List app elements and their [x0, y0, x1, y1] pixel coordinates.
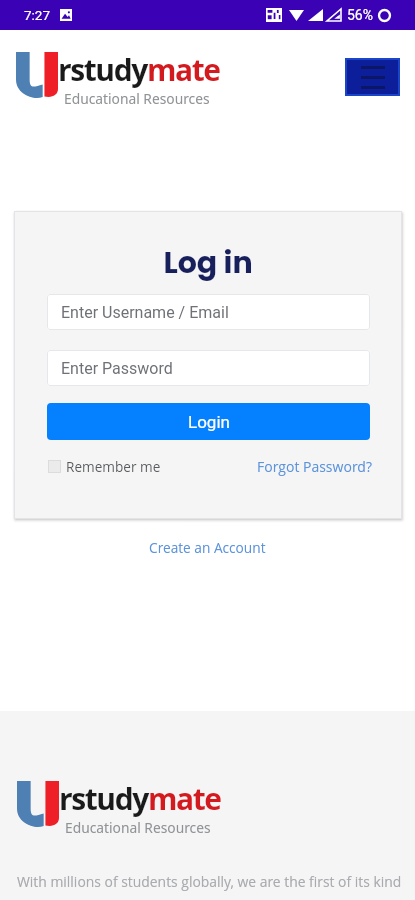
- staticText: rstudymate: [58, 49, 220, 90]
- staticText: Educational Resources: [64, 89, 210, 108]
- staticText: 7:27: [24, 7, 51, 23]
- staticText: rstudymate: [59, 778, 221, 819]
- staticText: Enter Password: [61, 359, 173, 378]
- button[interactable]: Create an Account: [0, 538, 415, 557]
- button[interactable]: Enter Username / Email: [47, 294, 370, 330]
- button[interactable]: Open navigation menu: [347, 60, 398, 94]
- button[interactable]: Login: [47, 403, 370, 440]
- staticText: 56%: [347, 7, 373, 23]
- staticText: Educational Resources: [65, 818, 211, 837]
- staticText: Enter Username / Email: [61, 303, 229, 322]
- button[interactable]: Forgot Password?: [257, 457, 372, 476]
- button[interactable]: Enter Password: [47, 350, 370, 386]
- staticText: Forgot Password?: [257, 457, 372, 476]
- staticText: Log in: [14, 242, 402, 284]
- staticText: Login: [188, 412, 230, 432]
- staticText: Remember me: [66, 457, 161, 476]
- button[interactable]: Remember me: [48, 457, 161, 476]
- staticText: With millions of students globally, we a…: [17, 872, 402, 891]
- staticText: Create an Account: [149, 538, 266, 557]
